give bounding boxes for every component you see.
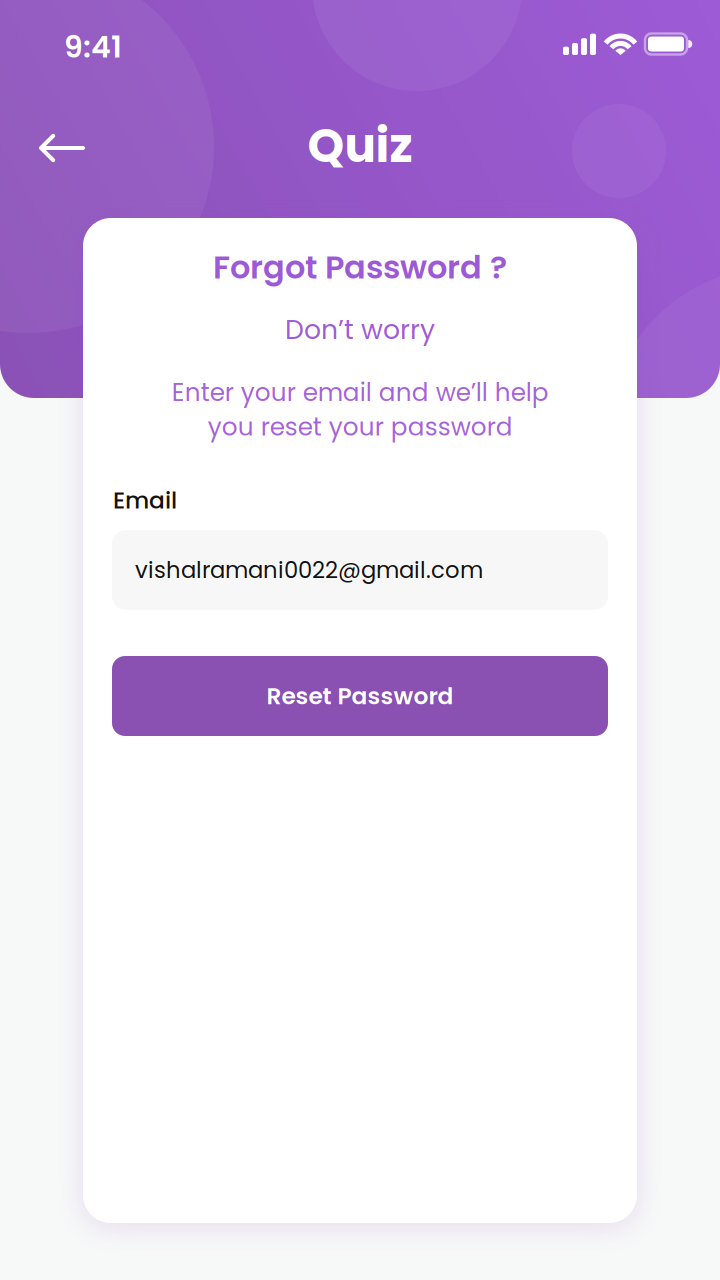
staticText: Email [113,484,177,517]
staticText: Enter your email and we’ll help you rese… [171,375,548,444]
staticText: vishalramani0022@gmail.com [135,554,483,586]
staticText: Forgot Password ? [213,245,507,290]
button[interactable]: Reset Password [112,656,608,736]
staticText: Quiz [307,113,412,178]
button[interactable]: Back [25,118,99,178]
staticText: 9:41 [64,26,122,68]
staticText: Don’t worry [285,311,435,348]
staticText: Reset Password [266,680,453,712]
